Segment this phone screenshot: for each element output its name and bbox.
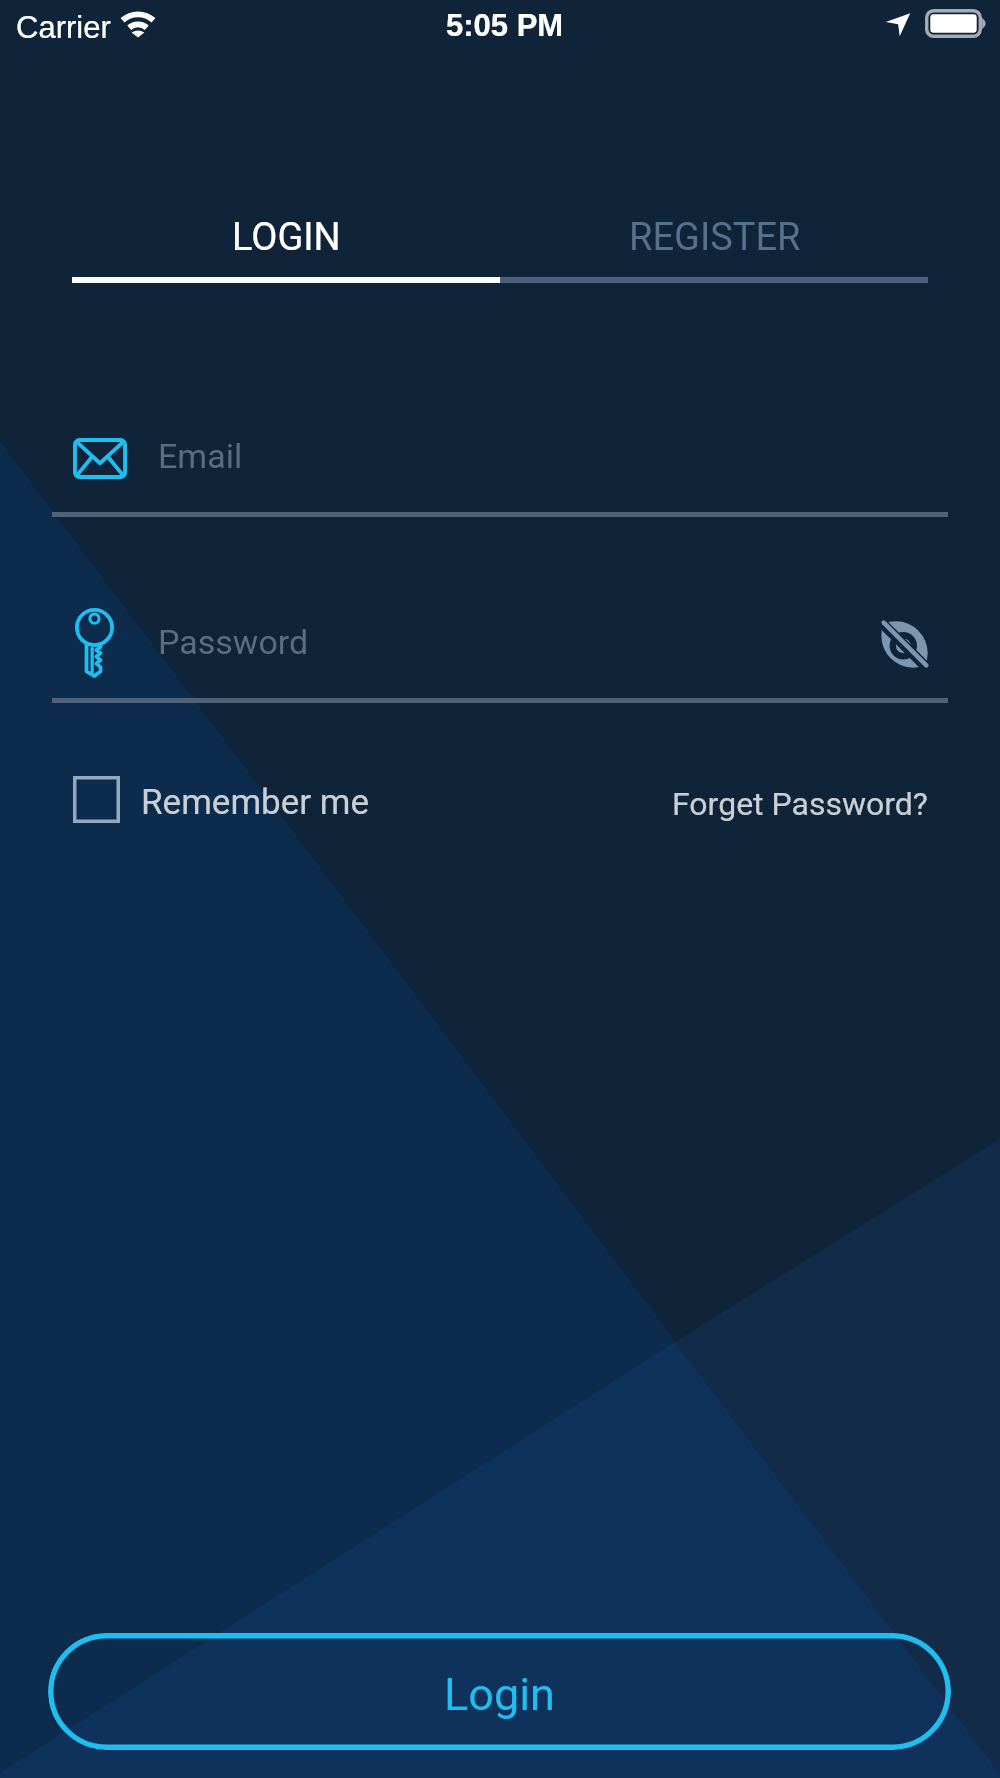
- button[interactable]: Forget Password?: [662, 770, 936, 834]
- button[interactable]: Login: [48, 1633, 951, 1750]
- staticText: Password: [158, 622, 309, 662]
- staticText: Carrier: [16, 10, 111, 45]
- staticText: Email: [158, 436, 243, 476]
- button[interactable]: REGISTER: [500, 196, 928, 283]
- button[interactable]: Password: [52, 606, 948, 703]
- button[interactable]: Show password: [856, 596, 952, 692]
- staticText: Remember me: [141, 782, 370, 823]
- staticText: LOGIN: [232, 215, 341, 260]
- staticText: REGISTER: [629, 215, 801, 260]
- staticText: Login: [444, 1668, 555, 1721]
- button[interactable]: Remember me: [58, 762, 383, 838]
- button[interactable]: LOGIN: [72, 196, 500, 283]
- button[interactable]: Email: [52, 420, 948, 517]
- staticText: Forget Password?: [672, 785, 928, 823]
- staticText: 5:05 PM: [446, 8, 564, 43]
